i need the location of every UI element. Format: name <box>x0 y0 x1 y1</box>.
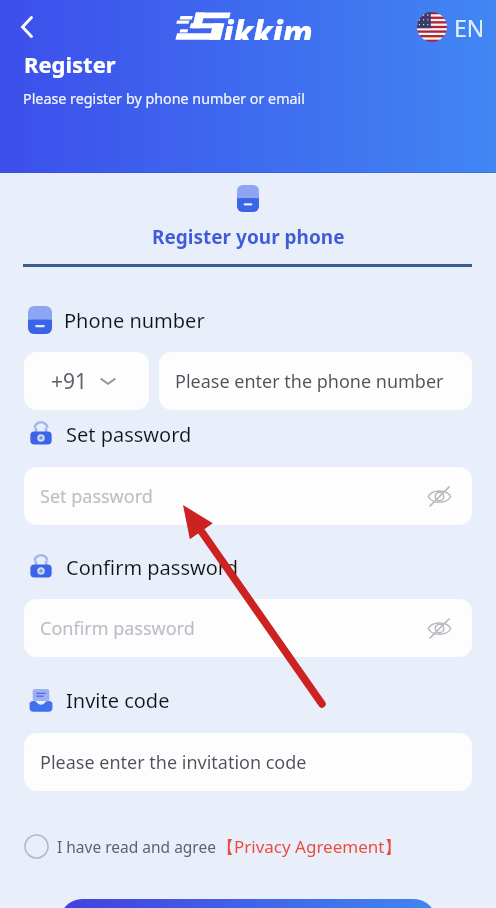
staticText: Please register by phone number or email <box>23 89 305 108</box>
button[interactable]: EN <box>417 12 485 42</box>
button[interactable]: Please enter the phone number <box>159 352 472 410</box>
button[interactable]: Confirm password <box>24 599 472 657</box>
staticText: Please enter the invitation code <box>40 750 307 775</box>
button[interactable]: Show password <box>424 613 454 643</box>
staticText: Confirm password <box>40 616 195 641</box>
button[interactable]: Register <box>60 899 436 908</box>
staticText: I have read and agree <box>57 836 216 857</box>
staticText: +91 <box>51 367 88 396</box>
button[interactable]: Set password <box>24 467 472 525</box>
staticText: ikkim <box>223 10 313 40</box>
button[interactable]: I have read and agree <box>24 833 402 859</box>
staticText: Set password <box>66 421 192 448</box>
staticText: Set password <box>40 484 153 509</box>
staticText: 【Privacy Agreement】 <box>217 835 402 858</box>
staticText: Register <box>24 49 116 79</box>
button[interactable]: +91 <box>24 352 149 410</box>
button[interactable]: Please enter the invitation code <box>24 733 472 791</box>
staticText: Confirm password <box>66 554 238 581</box>
staticText: Phone number <box>64 307 205 334</box>
staticText: Register your phone <box>152 224 345 250</box>
staticText: EN <box>454 12 485 42</box>
button[interactable]: Show password <box>424 481 454 511</box>
button[interactable]: Back <box>9 9 45 45</box>
staticText: Please enter the phone number <box>175 369 444 394</box>
staticText: Invite code <box>66 687 170 714</box>
